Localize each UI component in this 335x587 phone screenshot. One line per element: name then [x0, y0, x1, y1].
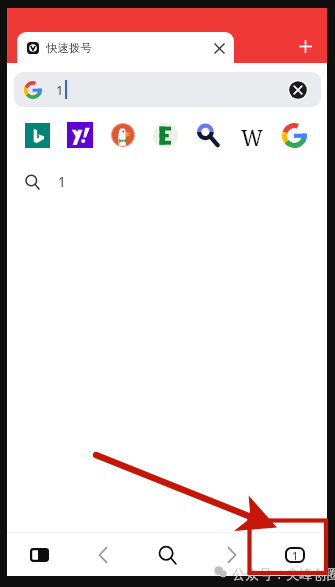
button[interactable]: DuckDuckGo [101, 117, 144, 153]
button[interactable]: Back [71, 533, 135, 576]
staticText: 1 [56, 81, 64, 99]
button[interactable]: 快速拨号 [17, 32, 234, 63]
button[interactable]: Ecosia [144, 117, 187, 153]
staticText: 1 [58, 173, 66, 191]
button[interactable]: Bing [16, 117, 58, 153]
button[interactable]: 1 [14, 72, 321, 107]
button[interactable]: 1 [7, 166, 327, 197]
button[interactable]: Clear [287, 79, 309, 101]
button[interactable]: Wikipedia [230, 117, 273, 153]
button[interactable]: Forward [199, 533, 263, 576]
button[interactable]: Close tab [208, 37, 230, 59]
button[interactable]: Panels [7, 533, 71, 576]
staticText: 公众号：尖峰创圈 [232, 566, 335, 583]
button[interactable]: New tab [289, 30, 321, 62]
button[interactable]: Search [135, 533, 199, 576]
button[interactable]: Google [273, 117, 316, 153]
button[interactable]: Startpage [187, 117, 230, 153]
button[interactable]: Tabs [263, 533, 327, 576]
staticText: 快速拨号 [46, 41, 92, 55]
staticText: 1 [292, 548, 299, 563]
staticText: W [241, 124, 263, 153]
button[interactable]: Yahoo [58, 117, 101, 153]
